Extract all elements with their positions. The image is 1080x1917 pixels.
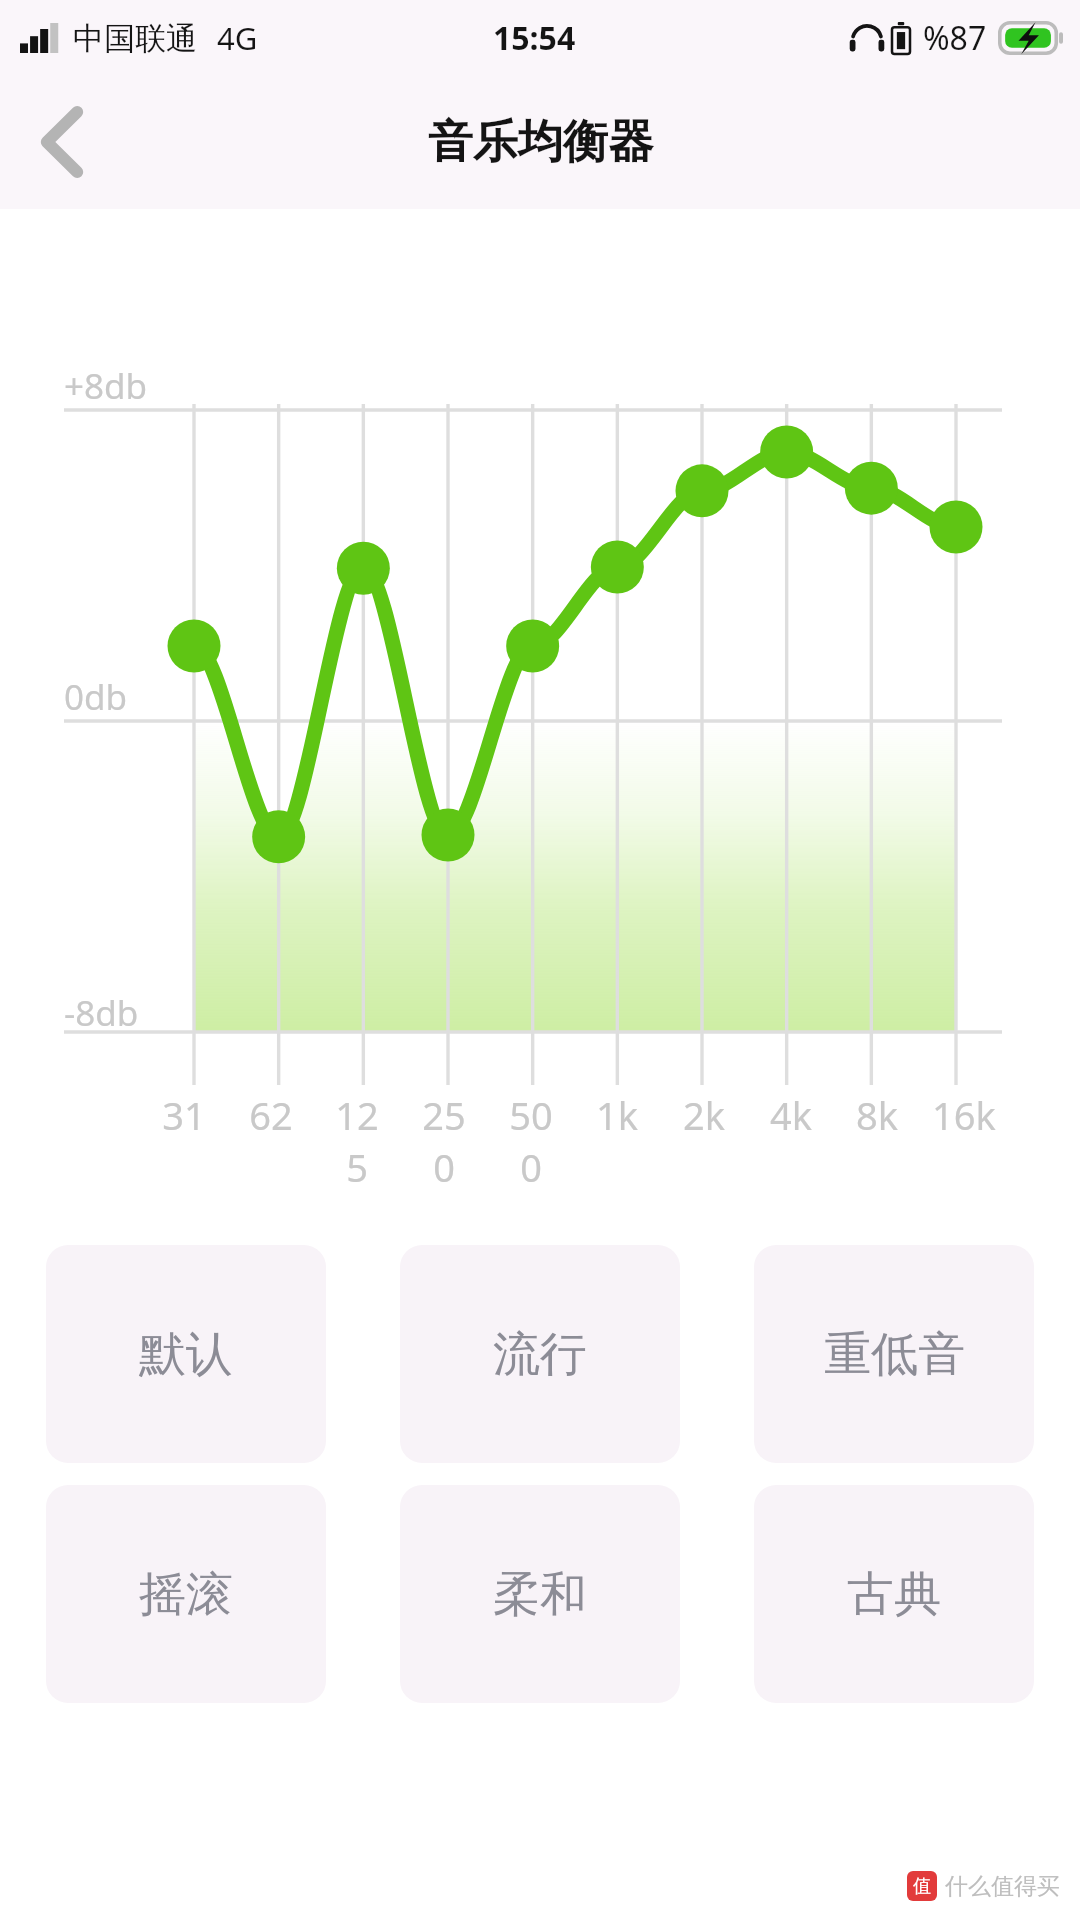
staticText: +8db bbox=[64, 362, 148, 410]
staticText: 重低音 bbox=[824, 1325, 965, 1384]
staticText: %87 bbox=[923, 16, 987, 60]
staticText: 4k bbox=[759, 1089, 823, 1141]
staticText: 62 bbox=[239, 1089, 303, 1141]
staticText: 0db bbox=[64, 673, 128, 721]
staticText: 音乐均衡器 bbox=[428, 114, 653, 171]
staticText: 古典 bbox=[847, 1565, 941, 1624]
button[interactable]: 默认 bbox=[46, 1245, 326, 1463]
staticText: 4G bbox=[217, 17, 258, 59]
button[interactable]: 柔和 bbox=[400, 1485, 680, 1703]
button[interactable]: 重低音 bbox=[754, 1245, 1034, 1463]
staticText: 值 bbox=[913, 1875, 931, 1898]
button[interactable]: 摇滚 bbox=[46, 1485, 326, 1703]
staticText: 1k bbox=[585, 1089, 649, 1141]
staticText: 2k bbox=[672, 1089, 736, 1141]
staticText: 柔和 bbox=[493, 1565, 587, 1624]
staticText: 31 bbox=[152, 1089, 216, 1141]
staticText: 15:54 bbox=[493, 16, 576, 60]
button[interactable]: 流行 bbox=[400, 1245, 680, 1463]
staticText: 默认 bbox=[139, 1325, 233, 1384]
staticText: 500 bbox=[499, 1089, 563, 1193]
staticText: 摇滚 bbox=[139, 1565, 233, 1624]
button[interactable]: Back bbox=[0, 80, 124, 204]
staticText: 125 bbox=[325, 1089, 389, 1193]
staticText: 流行 bbox=[493, 1325, 587, 1384]
staticText: 什么值得买 bbox=[945, 1872, 1060, 1901]
staticText: 16k bbox=[932, 1089, 996, 1141]
staticText: 8k bbox=[845, 1089, 909, 1141]
staticText: 中国联通 bbox=[73, 19, 197, 58]
staticText: -8db bbox=[64, 989, 139, 1037]
button[interactable]: 古典 bbox=[754, 1485, 1034, 1703]
staticText: 250 bbox=[412, 1089, 476, 1193]
